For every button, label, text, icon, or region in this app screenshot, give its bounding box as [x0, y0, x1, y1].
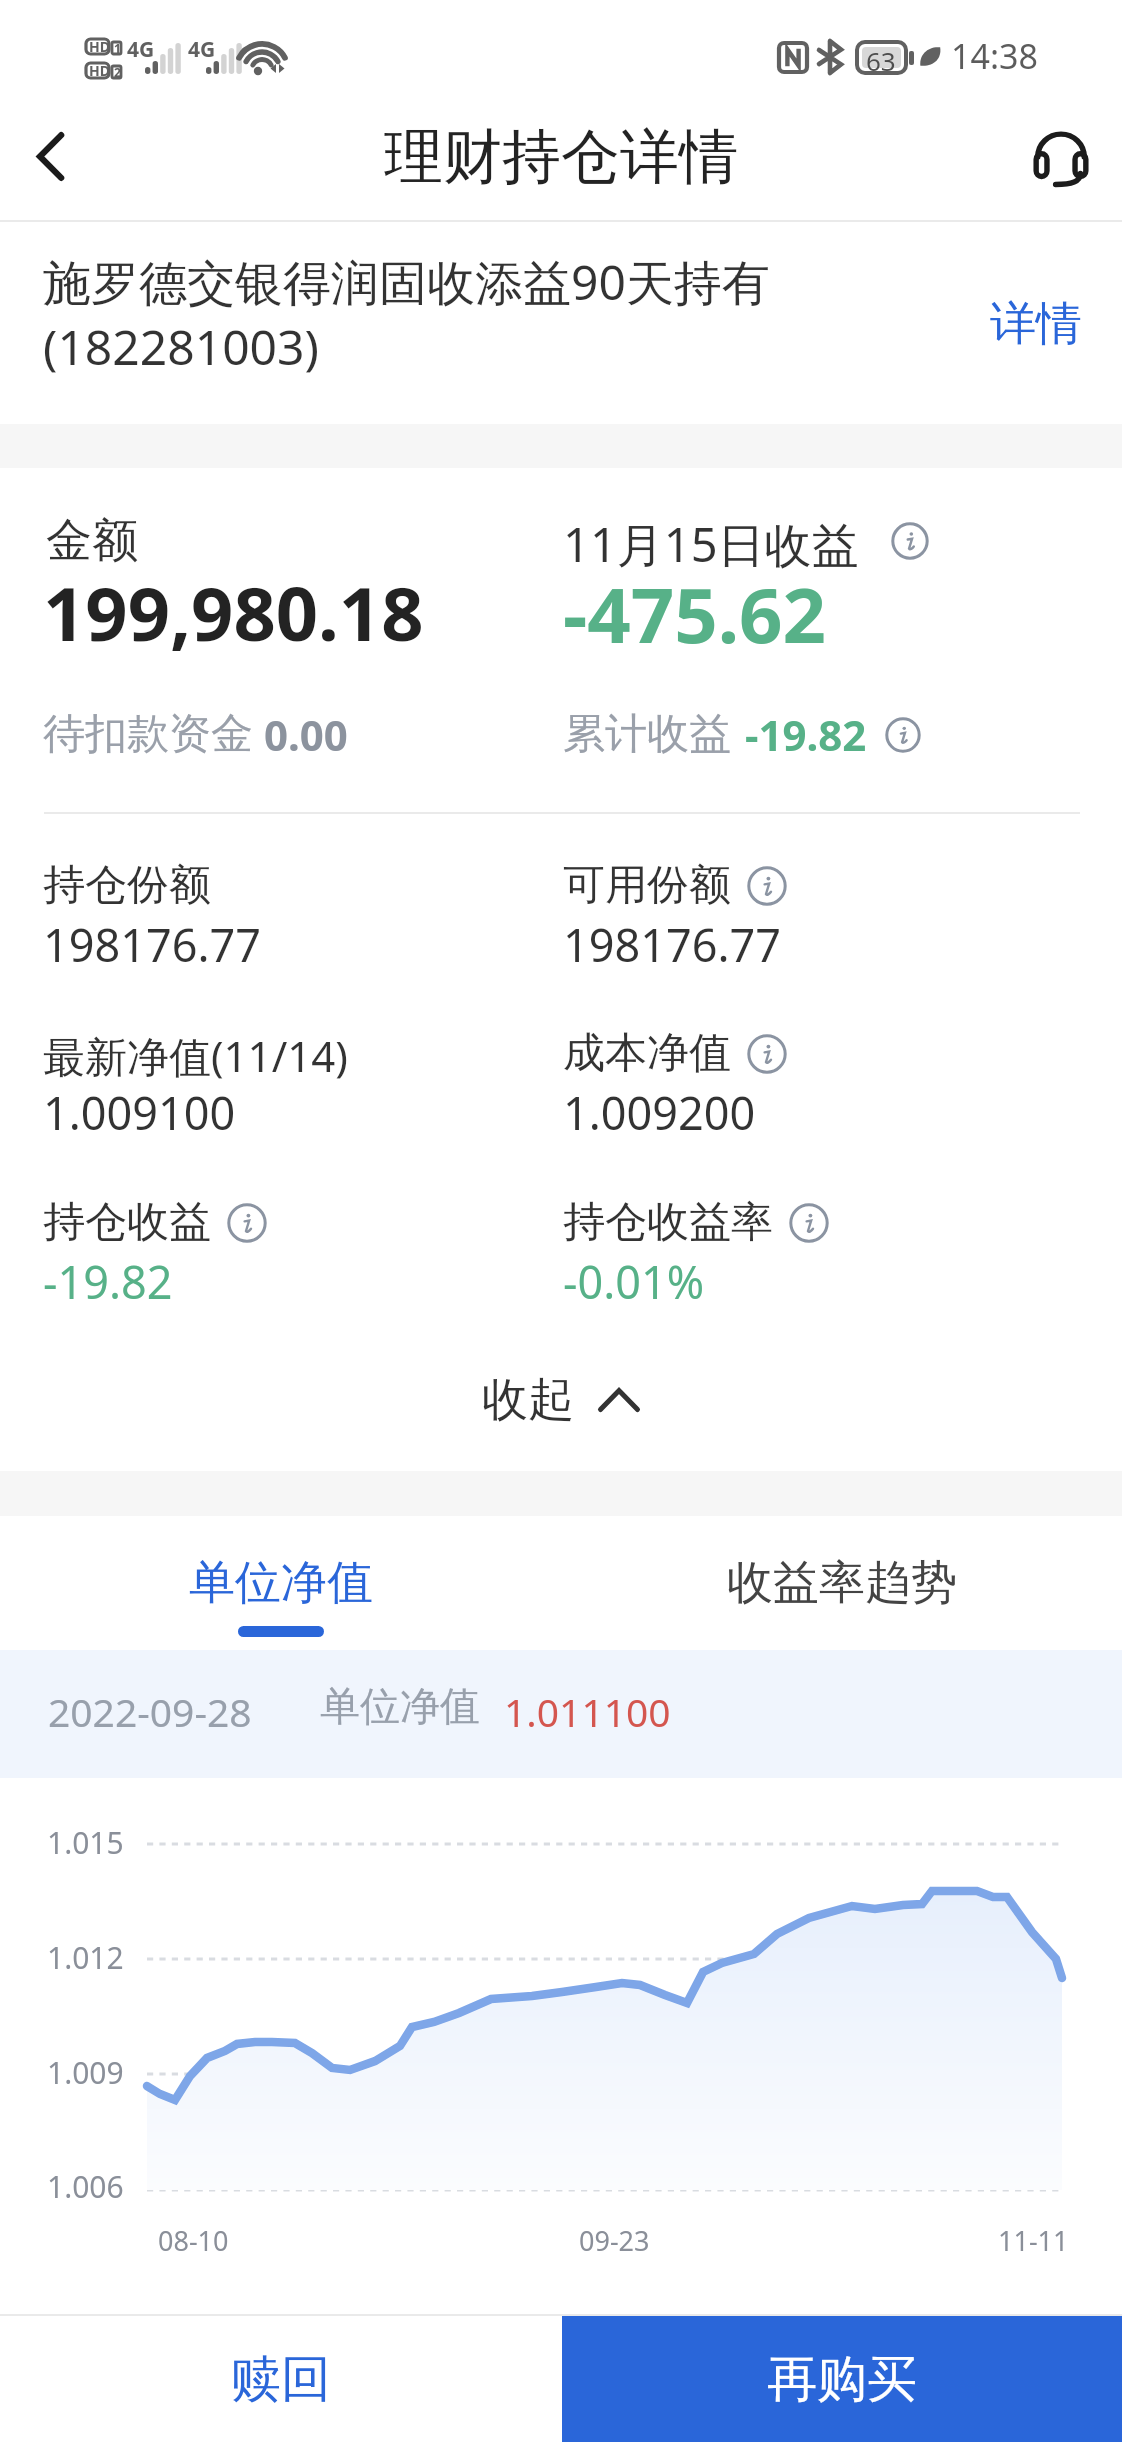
button[interactable]: More information — [891, 522, 929, 560]
staticText: 持仓份额 — [43, 859, 211, 912]
staticText: 累计收益 — [563, 708, 731, 761]
button[interactable]: More information — [789, 1203, 829, 1243]
staticText: 金额 — [46, 512, 138, 570]
button[interactable]: Customer service — [1012, 105, 1122, 220]
staticText: 收起 — [482, 1371, 574, 1429]
staticText: 2022-09-28 — [48, 1685, 252, 1738]
button[interactable]: More information — [227, 1203, 267, 1243]
staticText: 收益率趋势 — [727, 1554, 957, 1612]
staticText: 详情 — [990, 295, 1082, 353]
button[interactable]: 再购买 — [562, 2316, 1122, 2442]
button[interactable]: 单位净值 — [0, 1516, 561, 1650]
staticText: 1.015 — [47, 1822, 124, 1863]
staticText: 08-10 — [158, 2222, 229, 2259]
staticText: 持仓收益 — [43, 1196, 211, 1249]
staticText: 1.012 — [47, 1937, 124, 1978]
button[interactable]: More information — [747, 1034, 787, 1074]
staticText: 1.006 — [47, 2166, 124, 2207]
staticText: HD — [89, 37, 110, 56]
staticText: 成本净值 — [563, 1027, 731, 1080]
staticText: 1.009 — [47, 2052, 124, 2093]
staticText: 09-23 — [579, 2222, 650, 2259]
staticText: 施罗德交银得润固收添益90天持有 — [43, 249, 770, 315]
staticText: (182281003) — [43, 314, 319, 379]
staticText: 11月15日收益 — [563, 512, 859, 576]
staticText: -19.82 — [745, 706, 867, 763]
staticText: 最新净值(11/14) — [43, 1027, 348, 1084]
button[interactable]: 收起 — [0, 1352, 1122, 1448]
staticText: 4G — [127, 35, 155, 64]
staticText: 198176.77 — [563, 914, 781, 975]
staticText: 11-11 — [998, 2222, 1069, 2259]
button[interactable]: 详情 — [972, 275, 1100, 373]
button[interactable]: 收益率趋势 — [561, 1516, 1122, 1650]
button[interactable]: Back — [0, 105, 96, 220]
staticText: 1.011100 — [504, 1685, 671, 1738]
staticText: -19.82 — [43, 1251, 173, 1312]
staticText: -0.01% — [563, 1251, 705, 1312]
staticText: 0.00 — [264, 706, 348, 763]
staticText: 14:38 — [951, 33, 1038, 79]
staticText: -475.62 — [563, 562, 827, 666]
staticText: 199,980.18 — [43, 562, 424, 663]
staticText: 可用份额 — [563, 859, 731, 912]
staticText: 198176.77 — [43, 914, 261, 975]
staticText: 单位净值 — [320, 1681, 480, 1731]
staticText: 1.009200 — [563, 1082, 756, 1143]
staticText: 1 — [114, 40, 121, 56]
staticText: 理财持仓详情 — [384, 120, 738, 194]
staticText: 赎回 — [231, 2348, 331, 2411]
staticText: 再购买 — [767, 2348, 917, 2411]
button[interactable]: More information — [885, 717, 921, 753]
staticText: 4G — [188, 35, 216, 64]
button[interactable]: More information — [747, 866, 787, 906]
staticText: HD — [89, 61, 110, 80]
staticText: 单位净值 — [189, 1554, 373, 1612]
button[interactable]: 赎回 — [0, 2316, 562, 2442]
staticText: 63 — [866, 43, 896, 78]
staticText: 待扣款资金 — [43, 708, 253, 761]
staticText: 2 — [114, 64, 121, 80]
staticText: 1.009100 — [43, 1082, 236, 1143]
staticText: 持仓收益率 — [563, 1196, 773, 1249]
